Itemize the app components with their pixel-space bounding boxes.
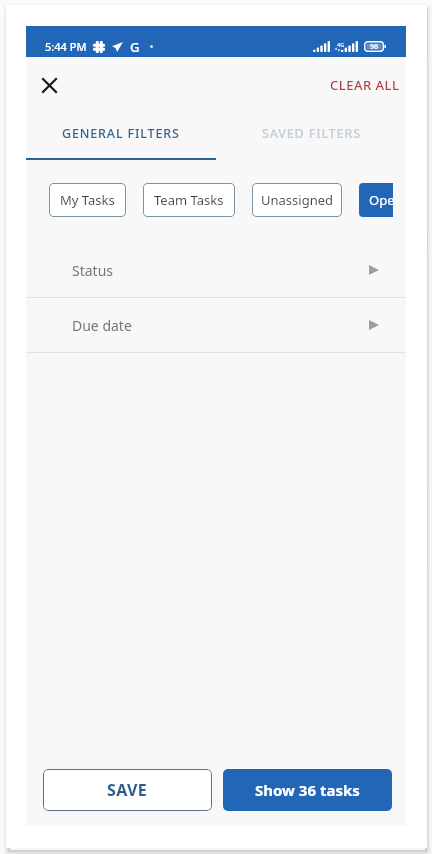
staticText: 5:44 PM [45,39,87,54]
staticText: 4G [337,41,345,48]
button[interactable]: Team Tasks [143,183,235,217]
staticText: Unassigned [261,191,333,209]
staticText: Team Tasks [154,191,224,209]
staticText: GENERAL FILTERS [62,125,180,142]
button[interactable]: Open [359,183,393,217]
staticText: SAVED FILTERS [262,125,361,142]
button[interactable]: Due date [26,298,406,352]
staticText: G [130,38,140,56]
staticText: CLEAR ALL [330,76,400,94]
staticText: My Tasks [60,191,115,209]
button[interactable]: SAVE [43,769,212,811]
staticText: 96 [370,42,379,52]
staticText: Open [369,191,393,209]
button[interactable]: CLEAR ALL [324,67,406,103]
button[interactable]: Close [36,72,62,98]
button[interactable]: GENERAL FILTERS [26,112,216,160]
button[interactable]: Show 36 tasks [223,769,392,811]
button[interactable]: My Tasks [49,183,126,217]
staticText: Status [72,261,114,280]
staticText: SAVE [107,779,148,801]
button[interactable]: SAVED FILTERS [216,112,406,160]
staticText: Show 36 tasks [255,780,360,800]
button[interactable]: Status [26,243,406,297]
button[interactable]: Unassigned [252,183,342,217]
staticText: Due date [72,316,132,335]
